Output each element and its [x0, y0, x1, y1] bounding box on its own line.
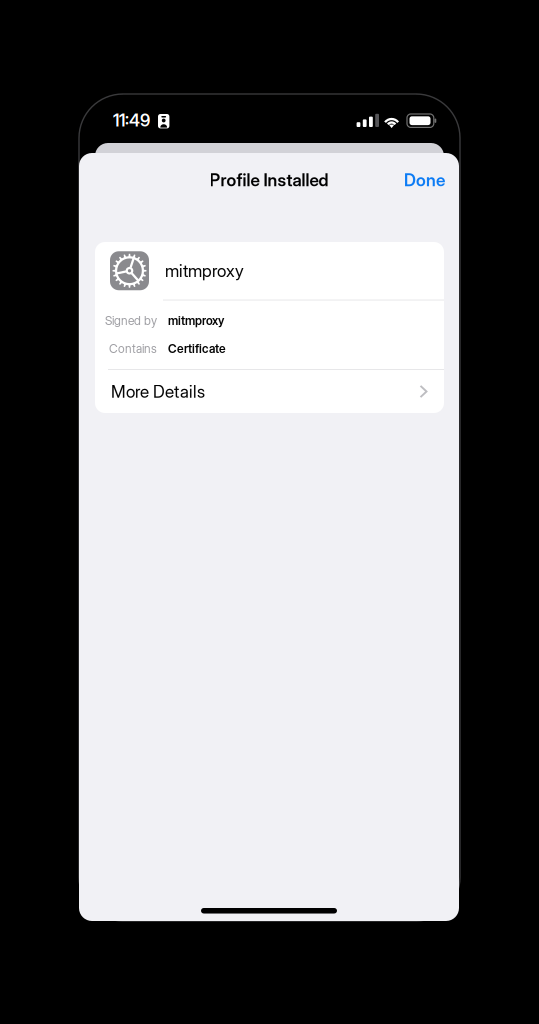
- button[interactable]: More Details: [95, 370, 444, 413]
- staticText: More Details: [111, 381, 205, 402]
- staticText: Certificate: [168, 342, 226, 356]
- staticText: 11:49: [113, 110, 150, 131]
- button[interactable]: Done: [365, 158, 445, 202]
- staticText: Signed by: [105, 313, 157, 328]
- staticText: Contains: [109, 341, 157, 356]
- staticText: Done: [404, 170, 445, 190]
- staticText: Profile Installed: [209, 170, 328, 190]
- staticText: mitmproxy: [168, 314, 224, 328]
- staticText: mitmproxy: [165, 260, 244, 281]
